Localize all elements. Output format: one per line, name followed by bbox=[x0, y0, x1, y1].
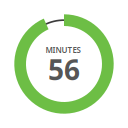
staticText: 56 bbox=[48, 51, 80, 88]
staticText: MINUTES bbox=[45, 45, 80, 55]
